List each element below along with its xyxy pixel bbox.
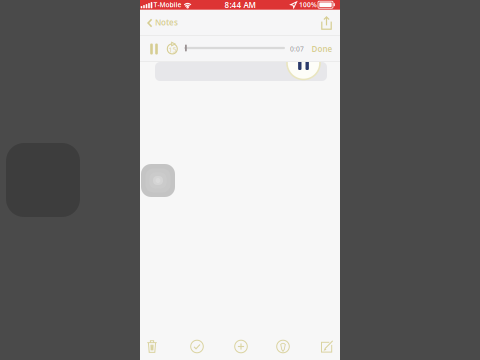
staticText: T-Mobile <box>153 0 181 9</box>
button[interactable]: Notes <box>140 10 184 36</box>
staticText: 100% <box>299 0 317 9</box>
staticText: 15 <box>168 45 176 54</box>
staticText: Notes <box>155 17 178 28</box>
button[interactable]: Share <box>313 10 340 36</box>
button[interactable]: New note <box>311 330 343 360</box>
button[interactable]: Add attachment <box>225 330 257 360</box>
button[interactable]: Markup <box>267 330 299 360</box>
button[interactable]: Delete note <box>136 330 168 360</box>
staticText: 8:44 AM <box>224 0 255 10</box>
button[interactable]: Pause <box>144 36 164 62</box>
button[interactable]: Done <box>307 36 337 62</box>
button[interactable]: Skip back 15 seconds <box>162 36 182 62</box>
staticText: 0:07 <box>290 45 304 53</box>
staticText: Done <box>311 44 332 54</box>
button[interactable]: Checklist <box>181 330 213 360</box>
